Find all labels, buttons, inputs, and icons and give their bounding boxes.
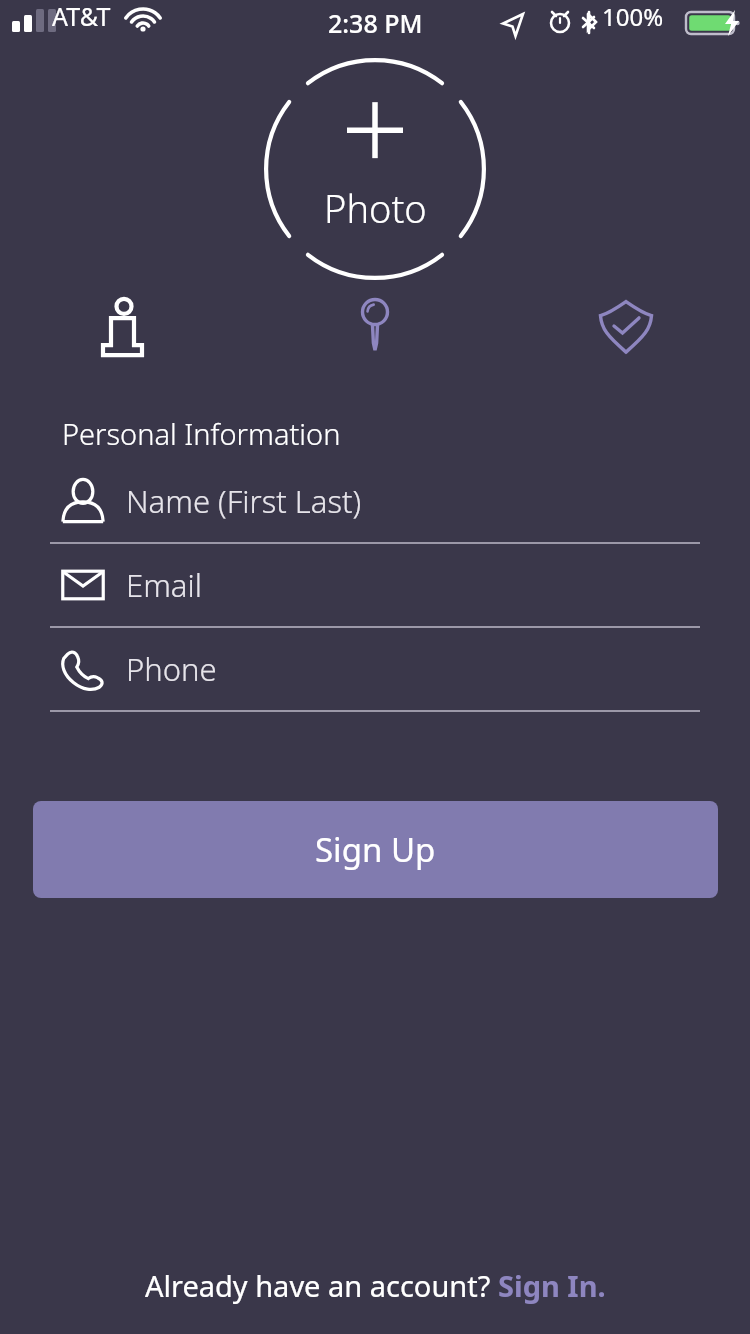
staticText: Phone [126, 648, 217, 690]
button[interactable]: Sign Up [33, 801, 718, 898]
button[interactable]: Personal Information step [86, 288, 162, 364]
button[interactable]: Email [0, 544, 750, 626]
staticText: Email [126, 564, 202, 606]
button[interactable]: Verification step [588, 288, 664, 364]
button[interactable]: Already have an account? [0, 1262, 750, 1308]
staticText: Already have an account? [145, 1266, 498, 1305]
staticText: Photo [324, 182, 427, 234]
staticText: Personal Information [62, 414, 341, 453]
button[interactable]: Location step [337, 288, 413, 364]
staticText: Sign In. [498, 1266, 606, 1305]
staticText: Name (First Last) [126, 480, 362, 522]
staticText: 2:38 PM [328, 6, 423, 40]
staticText: Sign Up [315, 827, 436, 872]
button[interactable]: Add Photo [264, 58, 486, 280]
button[interactable]: Name (First Last) [0, 460, 750, 542]
staticText: AT&T [52, 0, 111, 33]
button[interactable]: Phone [0, 628, 750, 710]
staticText: 100% [602, 0, 664, 33]
